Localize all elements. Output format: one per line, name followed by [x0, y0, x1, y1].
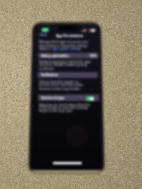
staticText: below or	[39, 47, 51, 51]
staticText: not in use. Disable to allow syncing	[39, 63, 87, 67]
staticText: Optimise all apps	[41, 96, 65, 100]
staticText: App Permissions	[56, 33, 83, 38]
staticText: Notifications	[41, 73, 59, 77]
staticText: at all times.	[39, 67, 55, 71]
staticText: is off, but alerts arrive with no delay.	[39, 106, 89, 110]
staticText: the lock screen and in the shade.	[39, 83, 84, 87]
staticText: Background activity is limited for apps	[39, 60, 91, 64]
button[interactable]: Back	[38, 33, 52, 38]
staticText: device features. Review the settings	[39, 44, 88, 48]
staticText: 40 %	[90, 54, 97, 58]
button[interactable]	[38, 72, 98, 78]
staticText: Apps may use more battery when this	[39, 103, 91, 107]
button[interactable]	[38, 53, 99, 59]
staticText: Battery optimisation	[41, 54, 69, 58]
staticText: Manage which apps can access your	[39, 40, 89, 44]
staticText: open system settings	[52, 47, 81, 51]
button[interactable]: Optimise battery usage	[38, 94, 99, 101]
staticText: Sensitive content stays hidden.	[39, 87, 81, 91]
staticText: ‹ Back	[38, 33, 47, 37]
staticText: Choose how alerts appear on	[39, 80, 79, 84]
staticText: Keep it on for most uses.	[39, 109, 73, 113]
